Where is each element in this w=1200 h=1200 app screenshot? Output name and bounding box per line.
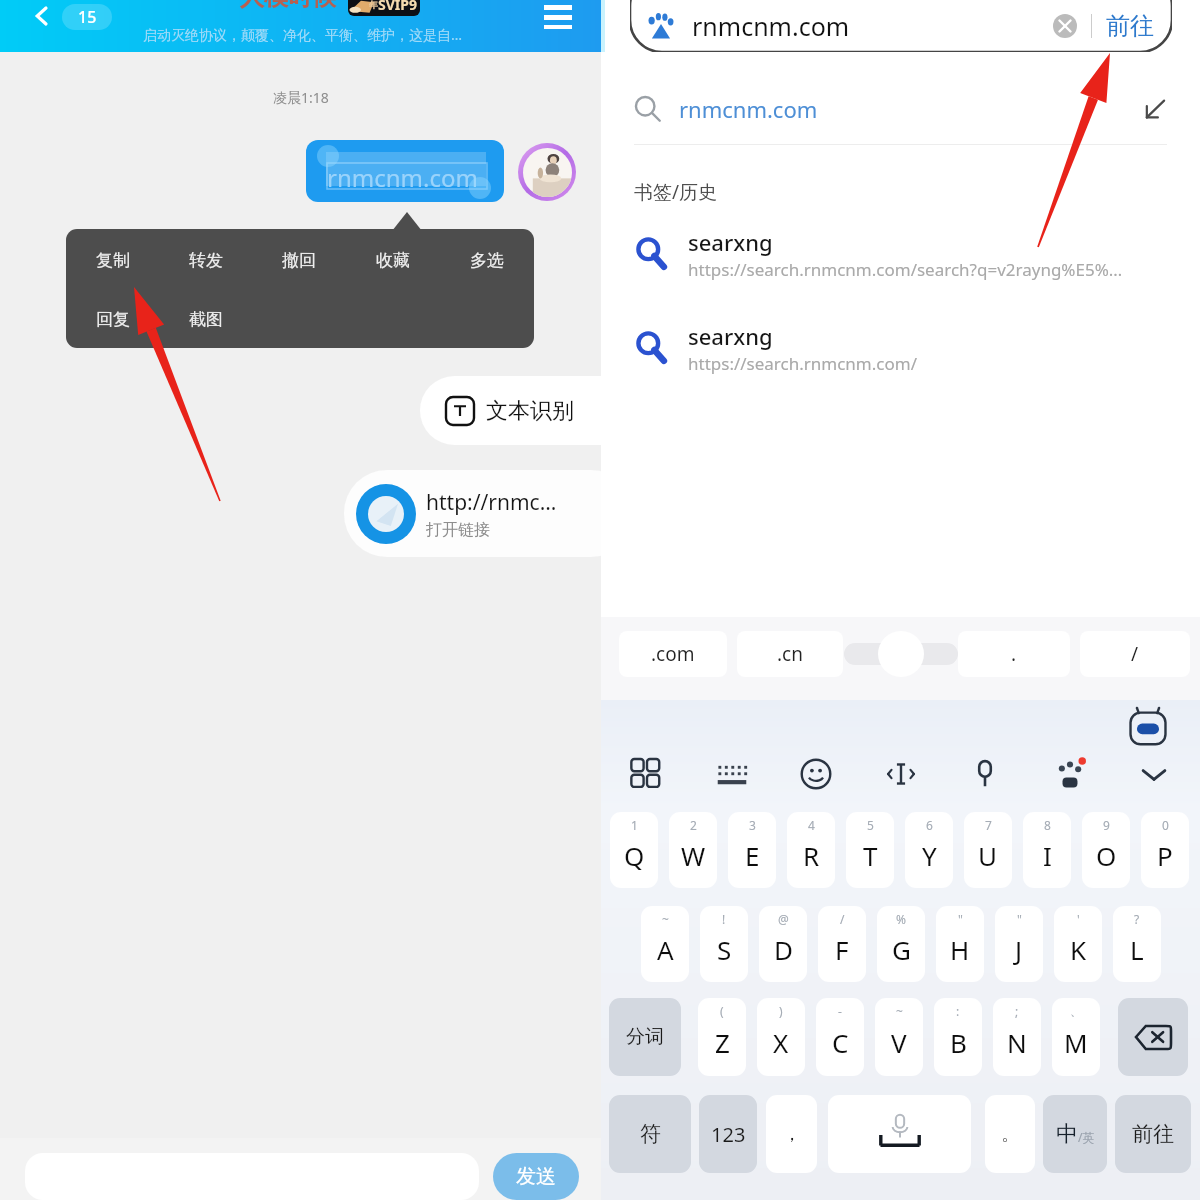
staticText: ! bbox=[722, 911, 726, 927]
button[interactable]: 3 bbox=[728, 812, 776, 888]
button[interactable]: / bbox=[1080, 631, 1190, 677]
button[interactable]: 、 bbox=[1052, 998, 1100, 1076]
button[interactable]: - bbox=[816, 998, 864, 1076]
button[interactable]: ? bbox=[1113, 906, 1161, 982]
button[interactable]: 前往 bbox=[1106, 11, 1154, 41]
button[interactable]: . bbox=[958, 631, 1070, 677]
button[interactable]: 7 bbox=[964, 812, 1012, 888]
button[interactable]: Back bbox=[32, 6, 52, 26]
staticText: 凌晨1:18 bbox=[273, 88, 329, 107]
button[interactable]: 分词 bbox=[609, 998, 681, 1076]
button[interactable]: 撤回 bbox=[252, 229, 346, 291]
staticText: 发送 bbox=[516, 1164, 556, 1189]
button[interactable]: searxng bbox=[634, 227, 1167, 281]
staticText: 前往 bbox=[1106, 11, 1154, 41]
button[interactable]: Backspace bbox=[1118, 998, 1188, 1076]
button[interactable]: 4 bbox=[787, 812, 835, 888]
button[interactable]: 123 bbox=[699, 1095, 757, 1173]
button[interactable]: 1 bbox=[610, 812, 658, 888]
staticText: % bbox=[896, 911, 906, 927]
staticText: 书签/历史 bbox=[634, 179, 718, 205]
staticText: E bbox=[745, 838, 760, 873]
button[interactable]: Space bbox=[828, 1095, 971, 1173]
staticText: http://rnmc… bbox=[426, 488, 557, 517]
button[interactable]: " bbox=[936, 906, 984, 982]
button[interactable]: rnmcnm.com bbox=[634, 74, 1167, 144]
button[interactable]: 中 bbox=[1043, 1095, 1107, 1173]
staticText: .com bbox=[651, 641, 695, 667]
staticText: 8 bbox=[1044, 817, 1051, 833]
staticText: W bbox=[681, 838, 706, 873]
button[interactable]: Menu bbox=[544, 5, 572, 29]
button[interactable]: 2 bbox=[669, 812, 717, 888]
button[interactable]: .cn bbox=[737, 631, 843, 677]
button[interactable]: 前往 bbox=[1115, 1095, 1191, 1173]
button[interactable]: Keyboard bbox=[710, 752, 754, 796]
button[interactable]: Collapse bbox=[1132, 752, 1176, 796]
button[interactable]: " bbox=[995, 906, 1043, 982]
staticText: T bbox=[863, 838, 878, 873]
button[interactable]: 转发 bbox=[159, 229, 252, 291]
staticText: 打开链接 bbox=[426, 520, 490, 540]
button[interactable]: 截图 bbox=[159, 291, 253, 348]
button[interactable]: Stickers bbox=[1048, 752, 1092, 796]
button[interactable]: 回复 bbox=[66, 291, 159, 348]
button[interactable]: 0 bbox=[1141, 812, 1189, 888]
button[interactable]: ~ bbox=[641, 906, 689, 982]
button[interactable]: 人模时候 bbox=[240, 0, 336, 12]
staticText: 多选 bbox=[470, 250, 504, 271]
staticText: ' bbox=[1077, 911, 1080, 927]
button[interactable]: : bbox=[934, 998, 982, 1076]
staticText: 回复 bbox=[96, 309, 130, 330]
button[interactable]: 15 bbox=[62, 4, 112, 30]
staticText: D bbox=[774, 932, 793, 967]
button[interactable]: Emoji bbox=[794, 752, 838, 796]
button[interactable]: ' bbox=[1054, 906, 1102, 982]
staticText: / bbox=[1131, 641, 1139, 667]
button[interactable]: searxng bbox=[634, 321, 1167, 375]
button[interactable]: ~ bbox=[875, 998, 923, 1076]
button[interactable]: Fill query bbox=[1143, 97, 1167, 121]
button[interactable]: ; bbox=[993, 998, 1041, 1076]
staticText: F bbox=[835, 932, 849, 967]
button[interactable]: http://rnmc… bbox=[344, 470, 634, 557]
button[interactable]: 收藏 bbox=[346, 229, 440, 291]
staticText: 2 bbox=[690, 817, 697, 833]
button[interactable]: rnmcnm.com bbox=[306, 140, 504, 202]
button[interactable]: 文本识别 bbox=[420, 376, 664, 445]
button[interactable]: .com bbox=[619, 631, 727, 677]
staticText: O bbox=[1096, 838, 1117, 873]
button[interactable]: 6 bbox=[905, 812, 953, 888]
staticText: A bbox=[657, 932, 674, 967]
button[interactable]: 。 bbox=[985, 1095, 1035, 1173]
button[interactable]: 多选 bbox=[440, 229, 534, 291]
staticText: P bbox=[1157, 838, 1173, 873]
button[interactable]: 8 bbox=[1023, 812, 1071, 888]
staticText: rnmcnm.com bbox=[327, 161, 478, 194]
button[interactable]: 复制 bbox=[66, 229, 159, 291]
button[interactable]: ( bbox=[698, 998, 746, 1076]
button[interactable]: % bbox=[877, 906, 925, 982]
staticText: 前往 bbox=[1132, 1121, 1174, 1147]
button[interactable]: Clear bbox=[1053, 14, 1077, 38]
button[interactable]: / bbox=[818, 906, 866, 982]
button[interactable]: Apps bbox=[625, 752, 669, 796]
button[interactable]: 发送 bbox=[493, 1153, 579, 1200]
button[interactable]: rnmcnm.com bbox=[630, 0, 1172, 52]
button[interactable]: 9 bbox=[1082, 812, 1130, 888]
button[interactable]: ! bbox=[700, 906, 748, 982]
button[interactable]: Avatar bbox=[518, 143, 576, 201]
staticText: 复制 bbox=[96, 250, 130, 271]
button[interactable]: @ bbox=[759, 906, 807, 982]
staticText: H bbox=[950, 932, 970, 967]
button[interactable]: Voice bbox=[963, 752, 1007, 796]
staticText: rnmcnm.com bbox=[679, 94, 818, 124]
button[interactable]: ， bbox=[766, 1095, 817, 1173]
button[interactable]: ) bbox=[757, 998, 805, 1076]
staticText: 15 bbox=[78, 6, 97, 28]
button[interactable]: Cursor bbox=[879, 752, 923, 796]
button[interactable]: 5 bbox=[846, 812, 894, 888]
button[interactable]: 符 bbox=[609, 1095, 691, 1173]
staticText: . bbox=[1011, 641, 1017, 667]
